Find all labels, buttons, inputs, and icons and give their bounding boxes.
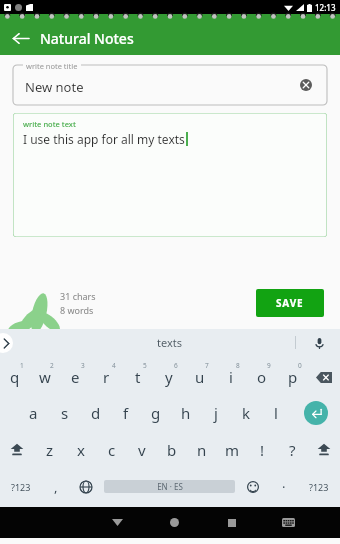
button[interactable]: o [246,360,277,394]
staticText: , [54,478,58,496]
staticText: 2 [50,361,54,370]
staticText: New note [25,78,84,96]
staticText: c [108,440,116,460]
staticText: EN · ES [157,481,183,492]
button[interactable]: r [91,360,122,394]
button[interactable]: a [18,394,49,431]
staticText: g [151,403,161,423]
staticText: e [71,367,80,387]
button[interactable]: write note text [13,113,327,237]
staticText: ! [260,440,265,460]
staticText: 0 [298,361,302,370]
staticText: v [138,440,146,460]
button[interactable]: l [261,394,291,431]
staticText: 31 chars [60,290,96,302]
button[interactable]: Enter [291,394,340,431]
staticText: 1 [20,361,24,370]
button[interactable]: Recent apps [203,507,260,538]
button[interactable]: Backspace [308,360,340,394]
button[interactable]: More suggestions [0,333,13,353]
button[interactable]: f [111,394,141,431]
button[interactable]: q [0,360,30,394]
button[interactable]: Hide keyboard [89,507,146,538]
button[interactable]: Voice input [308,332,330,354]
staticText: 3 [81,361,85,370]
staticText: t [135,367,141,387]
staticText: 8 [236,361,240,370]
button[interactable]: d [80,394,111,431]
staticText: n [197,440,207,460]
button[interactable]: · [269,468,298,505]
staticText: w [39,367,51,387]
staticText: 5 [143,361,147,370]
button[interactable]: k [231,394,261,431]
staticText: f [123,403,129,423]
staticText: ?123 [11,481,31,493]
button[interactable]: EN · ES [104,480,235,493]
button[interactable]: g [141,394,171,431]
staticText: 6 [174,361,178,370]
staticText: l [274,403,278,423]
button[interactable]: i [215,360,246,394]
staticText: m [225,440,240,460]
button[interactable]: y [153,360,184,394]
button[interactable]: s [49,394,80,431]
staticText: q [10,367,20,387]
button[interactable]: u [184,360,215,394]
staticText: Natural Notes [40,29,134,48]
button[interactable]: p [277,360,308,394]
staticText: k [242,403,251,423]
button[interactable]: m [217,431,247,468]
button[interactable]: c [96,431,127,468]
button[interactable]: ! [247,431,277,468]
button[interactable]: h [171,394,201,431]
staticText: z [46,440,54,460]
staticText: a [29,403,38,423]
button[interactable]: x [65,431,96,468]
button[interactable]: Shift [0,431,34,468]
staticText: h [181,403,191,423]
button[interactable]: Clear title [295,74,317,96]
button[interactable]: ?123 [298,468,340,505]
staticText: write note text [23,119,76,129]
staticText: ?123 [309,481,329,493]
staticText: r [103,367,110,387]
staticText: 4 [112,361,116,370]
button[interactable]: z [34,431,65,468]
button[interactable]: Home [146,507,203,538]
button[interactable]: ?123 [0,468,41,505]
button[interactable]: v [127,431,157,468]
staticText: 9 [267,361,271,370]
staticText: p [288,367,298,387]
button[interactable]: b [157,431,187,468]
button[interactable]: j [201,394,231,431]
button[interactable]: Back [0,22,40,55]
staticText: 8 words [60,304,94,316]
button[interactable]: texts [145,332,195,353]
button[interactable]: Shift [307,431,340,468]
button[interactable]: e [60,360,91,394]
staticText: d [91,403,101,423]
button[interactable]: w [30,360,60,394]
button[interactable]: ? [277,431,307,468]
staticText: j [214,403,218,423]
staticText: SAVE [276,296,304,310]
staticText: I use this app for all my texts [23,131,185,147]
button[interactable]: Switch keyboard [260,507,317,538]
staticText: s [61,403,69,423]
button[interactable]: t [122,360,153,394]
staticText: 7 [205,361,209,370]
button[interactable]: Change language [70,468,102,505]
button[interactable]: Emoji [237,468,269,505]
staticText: write note title [26,61,78,71]
staticText: ? [289,440,296,460]
staticText: · [282,478,286,496]
staticText: b [167,440,177,460]
staticText: y [165,367,173,387]
staticText: 12:13 [315,2,336,13]
staticText: u [195,367,205,387]
button[interactable]: n [187,431,217,468]
button[interactable]: SAVE [256,289,324,317]
button[interactable]: , [41,468,70,505]
staticText: x [77,440,85,460]
